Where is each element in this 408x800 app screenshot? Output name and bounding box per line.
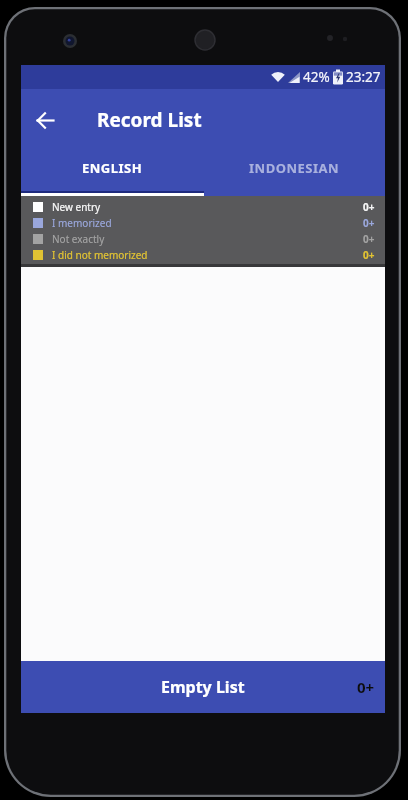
staticText: 0+ [363,216,375,230]
button[interactable]: Not exactly [33,231,375,247]
button[interactable]: I did not memorized [33,247,375,263]
button[interactable] [21,89,67,147]
staticText: 0+ [363,232,375,246]
staticText: Empty List [161,676,245,698]
button[interactable]: ENGLISH [21,147,203,196]
staticText: 0+ [363,200,375,214]
staticText: 0+ [357,677,375,697]
staticText: I memorized [52,216,112,230]
staticText: Record List [97,107,202,133]
staticText: 0+ [363,248,375,262]
button[interactable]: Empty List [21,661,385,713]
staticText: I did not memorized [52,248,148,262]
button[interactable]: New entry [33,199,375,215]
staticText: Not exactly [52,232,105,246]
staticText: ENGLISH [82,159,143,177]
button[interactable]: I memorized [33,215,375,231]
staticText: New entry [52,200,101,214]
staticText: 42% [303,68,330,86]
staticText: 23:27 [346,68,381,86]
staticText: INDONESIAN [249,159,340,177]
button[interactable]: INDONESIAN [203,147,385,196]
